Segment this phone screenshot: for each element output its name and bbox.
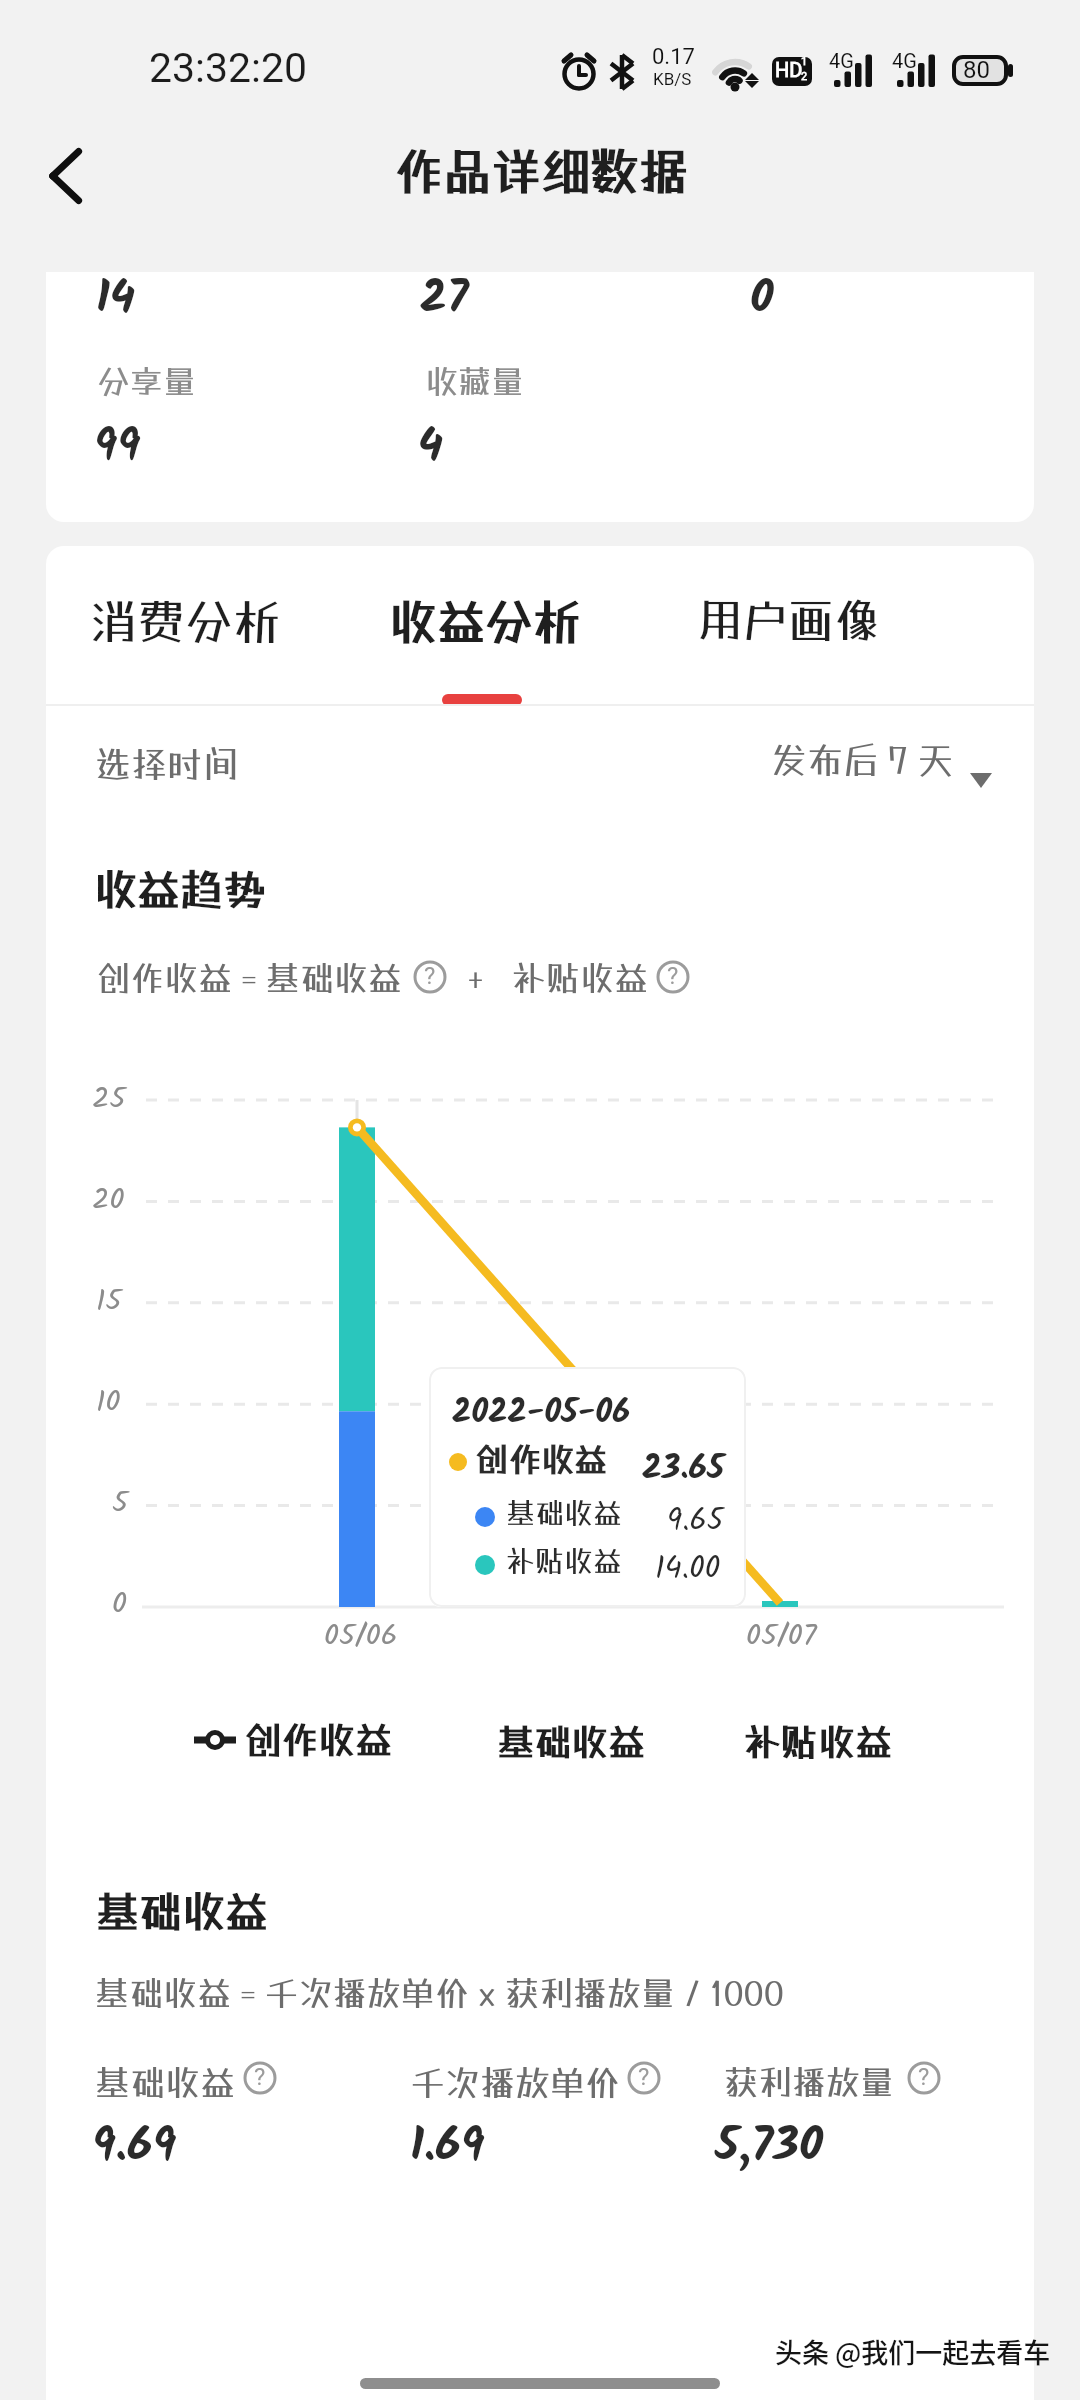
- button[interactable]: Help: [907, 2061, 941, 2095]
- staticText: 补贴收益: [506, 1544, 623, 1578]
- staticText: 9.69: [92, 2110, 177, 2185]
- staticText: 收益趋势: [94, 864, 266, 915]
- button[interactable]: Help: [627, 2061, 661, 2095]
- staticText: +: [467, 958, 484, 998]
- staticText: 基础收益: [506, 1496, 623, 1530]
- button[interactable]: 用户画像: [681, 546, 907, 705]
- staticText: 5: [112, 1480, 129, 1528]
- staticText: 1: [801, 55, 808, 68]
- staticText: 5,730: [715, 2110, 824, 2185]
- staticText: 创作收益: [244, 1718, 392, 1762]
- staticText: 4G: [829, 49, 854, 72]
- button[interactable]: 基础收益: [487, 1712, 657, 1768]
- staticText: 作品详细数据: [394, 142, 689, 200]
- staticText: ?: [424, 962, 436, 990]
- staticText: ?: [667, 962, 679, 990]
- button[interactable]: Help: [243, 2061, 277, 2095]
- staticText: ?: [638, 2063, 650, 2091]
- button[interactable]: Help: [656, 960, 690, 994]
- staticText: 发布后 7 天: [771, 739, 954, 781]
- staticText: 基础收益 = 千次播放单价 x 获利播放量 / 1000: [95, 1973, 784, 2013]
- staticText: 9.65: [667, 1497, 724, 1546]
- staticText: 获利播放量: [724, 2062, 894, 2102]
- staticText: 分享量: [97, 362, 196, 401]
- button[interactable]: Help: [413, 960, 447, 994]
- staticText: 收益分析: [389, 593, 582, 650]
- staticText: 2022-05-06: [452, 1387, 631, 1440]
- staticText: 80: [963, 56, 990, 84]
- staticText: 0: [750, 272, 774, 336]
- button[interactable]: 消费分析: [74, 546, 309, 705]
- staticText: 05/07: [746, 1613, 817, 1661]
- staticText: 1.69: [410, 2110, 485, 2185]
- staticText: 14.00: [655, 1545, 721, 1594]
- staticText: 4G: [892, 49, 917, 72]
- staticText: 15: [96, 1278, 122, 1326]
- staticText: 补贴收益: [512, 958, 648, 998]
- staticText: ?: [918, 2063, 930, 2091]
- staticText: 4: [418, 411, 444, 484]
- button[interactable]: 发布后 7 天: [757, 729, 1007, 815]
- button[interactable]: 收益分析: [374, 546, 607, 705]
- staticText: 基础收益: [96, 1886, 268, 1937]
- staticText: ?: [254, 2063, 266, 2091]
- staticText: 补贴收益: [744, 1720, 892, 1764]
- staticText: 2: [801, 70, 808, 83]
- staticText: 头条 @我们一起去看车: [775, 2332, 1051, 2371]
- staticText: 收藏量: [425, 362, 524, 401]
- staticText: 选择时间: [95, 743, 240, 785]
- staticText: 05/06: [324, 1613, 398, 1661]
- staticText: 10: [96, 1379, 121, 1427]
- staticText: 27: [420, 272, 469, 336]
- staticText: HD: [775, 58, 803, 81]
- staticText: 23:32:20: [149, 44, 308, 92]
- staticText: 用户画像: [696, 593, 880, 647]
- staticText: 0.17: [652, 44, 695, 70]
- staticText: 99: [94, 411, 141, 484]
- button[interactable]: 创作收益: [194, 1712, 392, 1768]
- staticText: 基础收益: [497, 1720, 645, 1764]
- staticText: 20: [92, 1177, 125, 1225]
- staticText: 创作收益: [475, 1440, 607, 1479]
- staticText: 14: [96, 272, 135, 336]
- staticText: 基础收益: [95, 2062, 236, 2103]
- staticText: 消费分析: [89, 593, 282, 650]
- staticText: KB/S: [653, 69, 692, 89]
- staticText: 0: [112, 1581, 127, 1629]
- staticText: 25: [92, 1076, 126, 1124]
- button[interactable]: 补贴收益: [734, 1712, 904, 1768]
- button[interactable]: Back: [16, 126, 116, 226]
- staticText: 千次播放单价: [410, 2062, 621, 2103]
- staticText: 创作收益 = 基础收益: [96, 958, 402, 998]
- staticText: 23.65: [642, 1442, 725, 1496]
